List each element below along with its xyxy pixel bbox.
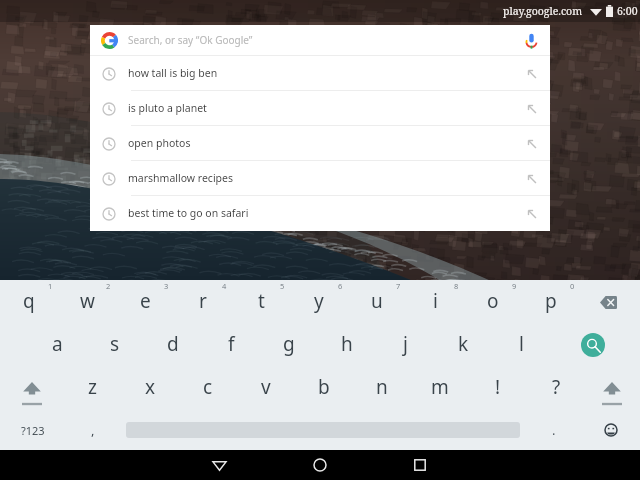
button[interactable]: g bbox=[260, 323, 318, 365]
staticText: ?123 bbox=[21, 423, 45, 438]
staticText: m bbox=[431, 374, 449, 400]
staticText: o bbox=[487, 288, 499, 314]
staticText: Search, or say “Ok Google” bbox=[128, 33, 253, 47]
button[interactable]: Backspace bbox=[579, 281, 637, 323]
button[interactable]: r bbox=[174, 280, 232, 322]
staticText: j bbox=[403, 331, 408, 357]
staticText: z bbox=[88, 374, 97, 400]
staticText: 5 bbox=[280, 281, 285, 291]
button[interactable]: a bbox=[28, 323, 86, 365]
staticText: c bbox=[203, 374, 213, 400]
other: Voice search bbox=[523, 32, 540, 49]
button[interactable]: y bbox=[290, 280, 348, 322]
staticText: a bbox=[52, 331, 63, 357]
staticText: 3 bbox=[164, 281, 169, 291]
button[interactable]: Recents bbox=[395, 450, 445, 480]
button[interactable]: l bbox=[492, 323, 550, 365]
button[interactable]: p bbox=[522, 280, 580, 322]
staticText: w bbox=[80, 288, 95, 314]
staticText: play.google.com bbox=[503, 4, 583, 18]
staticText: i bbox=[433, 288, 438, 314]
staticText: ? bbox=[552, 374, 561, 400]
staticText: p bbox=[545, 288, 557, 314]
staticText: y bbox=[314, 288, 324, 314]
staticText: q bbox=[23, 288, 35, 314]
button[interactable]: open photos bbox=[90, 126, 550, 161]
staticText: 6:00 bbox=[617, 4, 638, 18]
staticText: 2 bbox=[106, 281, 111, 291]
staticText: l bbox=[519, 331, 524, 357]
button[interactable]: . bbox=[525, 410, 583, 450]
button[interactable]: ? bbox=[527, 366, 585, 408]
staticText: 1 bbox=[48, 281, 53, 291]
staticText: 6 bbox=[338, 281, 343, 291]
button[interactable]: best time to go on safari bbox=[90, 196, 550, 231]
button[interactable]: z bbox=[63, 366, 121, 408]
button[interactable]: Search, or say “Ok Google” bbox=[90, 25, 550, 55]
staticText: d bbox=[167, 331, 179, 357]
button[interactable]: Home bbox=[295, 450, 345, 480]
staticText: 7 bbox=[396, 281, 401, 291]
button[interactable]: ! bbox=[469, 366, 527, 408]
button[interactable]: s bbox=[86, 323, 144, 365]
staticText: e bbox=[140, 288, 151, 314]
button[interactable]: f bbox=[202, 323, 260, 365]
staticText: is pluto a planet bbox=[128, 101, 207, 115]
staticText: t bbox=[258, 288, 265, 314]
button[interactable]: v bbox=[237, 366, 295, 408]
button[interactable]: d bbox=[144, 323, 202, 365]
button[interactable]: Emoji bbox=[582, 410, 640, 450]
button[interactable]: m bbox=[411, 366, 469, 408]
staticText: best time to go on safari bbox=[128, 206, 249, 220]
button[interactable]: ?123 bbox=[4, 410, 62, 450]
button[interactable]: i bbox=[406, 280, 464, 322]
staticText: r bbox=[199, 288, 207, 314]
staticText: how tall is big ben bbox=[128, 66, 218, 80]
staticText: , bbox=[91, 421, 95, 439]
button[interactable]: , bbox=[64, 410, 122, 450]
button[interactable]: Search bbox=[564, 324, 622, 366]
staticText: n bbox=[376, 374, 388, 400]
staticText: f bbox=[228, 331, 235, 357]
staticText: h bbox=[341, 331, 353, 357]
button[interactable]: t bbox=[232, 280, 290, 322]
staticText: marshmallow recipes bbox=[128, 171, 234, 185]
button[interactable]: j bbox=[376, 323, 434, 365]
staticText: . bbox=[552, 421, 556, 439]
button[interactable]: is pluto a planet bbox=[90, 91, 550, 126]
staticText: k bbox=[458, 331, 469, 357]
staticText: v bbox=[261, 374, 271, 400]
button[interactable]: e bbox=[116, 280, 174, 322]
staticText: open photos bbox=[128, 136, 191, 150]
button[interactable]: b bbox=[295, 366, 353, 408]
button[interactable]: how tall is big ben bbox=[90, 56, 550, 91]
staticText: ! bbox=[495, 374, 501, 400]
button[interactable]: marshmallow recipes bbox=[90, 161, 550, 196]
staticText: 9 bbox=[512, 281, 517, 291]
button[interactable]: c bbox=[179, 366, 237, 408]
staticText: x bbox=[145, 374, 156, 400]
button[interactable]: Back bbox=[194, 450, 244, 480]
staticText: 4 bbox=[222, 281, 227, 291]
staticText: u bbox=[371, 288, 383, 314]
staticText: g bbox=[283, 331, 295, 357]
staticText: 8 bbox=[454, 281, 459, 291]
staticText: b bbox=[318, 374, 330, 400]
staticText: 0 bbox=[570, 281, 575, 291]
staticText: s bbox=[110, 331, 120, 357]
button[interactable]: x bbox=[121, 366, 179, 408]
button[interactable]: Shift bbox=[3, 368, 61, 410]
button[interactable]: h bbox=[318, 323, 376, 365]
button[interactable]: Shift bbox=[583, 368, 640, 410]
button[interactable]: u bbox=[348, 280, 406, 322]
button[interactable]: k bbox=[434, 323, 492, 365]
button[interactable]: n bbox=[353, 366, 411, 408]
button[interactable]: w bbox=[58, 280, 116, 322]
button[interactable]: o bbox=[464, 280, 522, 322]
button[interactable]: q bbox=[0, 280, 58, 322]
